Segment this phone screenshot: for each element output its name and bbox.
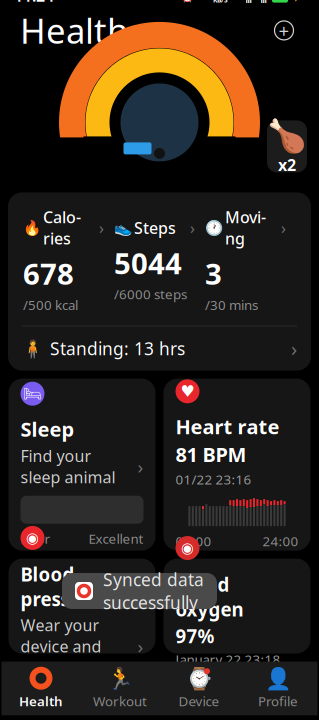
staticText: ıll	[245, 0, 251, 5]
button[interactable]: Add	[269, 15, 299, 45]
button[interactable]: 🕐	[205, 206, 296, 314]
staticText: ›	[291, 335, 297, 362]
staticText: 🏃	[106, 666, 133, 690]
staticText: ›	[281, 217, 286, 238]
staticText: 24:00	[262, 532, 298, 550]
staticText: /30 mins	[205, 296, 258, 314]
staticText: ◉	[181, 540, 194, 556]
staticText: 🕐	[205, 219, 223, 236]
button[interactable]: 🔥	[23, 206, 114, 314]
button[interactable]: 🛏	[8, 379, 155, 551]
staticText: 👟	[114, 219, 132, 236]
staticText: Find your sleep animal	[20, 445, 115, 488]
staticText: ⏰	[180, 0, 195, 2]
staticText: 11:24	[14, 0, 54, 6]
staticText: Health	[19, 692, 63, 710]
staticText: ıll	[260, 0, 266, 5]
staticText: ›	[190, 217, 195, 238]
staticText: Health	[20, 7, 128, 53]
staticText: Standing: 13 hrs	[50, 337, 185, 360]
staticText: 678	[23, 254, 74, 293]
staticText: ⌚	[185, 666, 212, 690]
staticText: 👤	[264, 666, 291, 690]
staticText: 🍗	[267, 117, 307, 154]
staticText: 3	[205, 254, 222, 293]
button[interactable]: 🏃	[80, 662, 159, 716]
staticText: 81 BPM	[175, 441, 246, 467]
button[interactable]: 🧍	[8, 327, 311, 371]
staticText: 01/22 23:16	[175, 470, 251, 488]
staticText: ›	[99, 217, 104, 238]
staticText: ◉	[26, 530, 39, 546]
staticText: /500 kcal	[23, 296, 78, 314]
staticText: Steps	[134, 217, 176, 238]
staticText: Profile	[258, 692, 298, 710]
button[interactable]: 👤	[238, 662, 317, 716]
staticText: Wear your device and measure	[20, 614, 101, 678]
staticText: 🧍	[22, 339, 44, 358]
staticText: x2	[278, 154, 296, 175]
staticText: 🛏	[23, 385, 42, 402]
staticText: ⚡	[292, 0, 305, 1]
staticText: /6000 steps	[114, 285, 187, 303]
staticText: Blood pressure	[20, 562, 100, 611]
staticText: 5044	[114, 243, 182, 282]
staticText: Heart rate	[175, 413, 279, 440]
staticText: Calories	[43, 206, 81, 249]
staticText: ♥	[180, 382, 194, 400]
staticText: ›	[137, 634, 143, 659]
staticText: 97%	[175, 624, 214, 648]
staticText: 00:00	[175, 532, 211, 550]
staticText: Excellent	[88, 530, 143, 547]
staticText: Device	[178, 692, 219, 710]
staticText: January 22 23:18	[175, 650, 280, 668]
staticText: Blood oxygen	[175, 572, 243, 622]
staticText: Synced data successfully	[103, 568, 204, 614]
staticText: KB/S	[213, 0, 228, 4]
staticText: ›	[137, 454, 143, 479]
staticText: Poor	[20, 530, 50, 547]
staticText: Workout	[93, 692, 147, 710]
button[interactable]: Health	[1, 662, 80, 716]
staticText: 🔥	[23, 219, 41, 236]
button[interactable]: Rewards x2	[267, 120, 307, 172]
button[interactable]: ◉	[163, 559, 310, 654]
button[interactable]: ♥	[163, 379, 310, 551]
staticText: Moving	[225, 206, 266, 249]
staticText: Sleep	[20, 416, 74, 442]
button[interactable]: ⌚	[159, 662, 238, 716]
button[interactable]: 👟	[114, 217, 205, 303]
button[interactable]: ◉	[8, 559, 155, 654]
staticText: +	[278, 18, 289, 43]
